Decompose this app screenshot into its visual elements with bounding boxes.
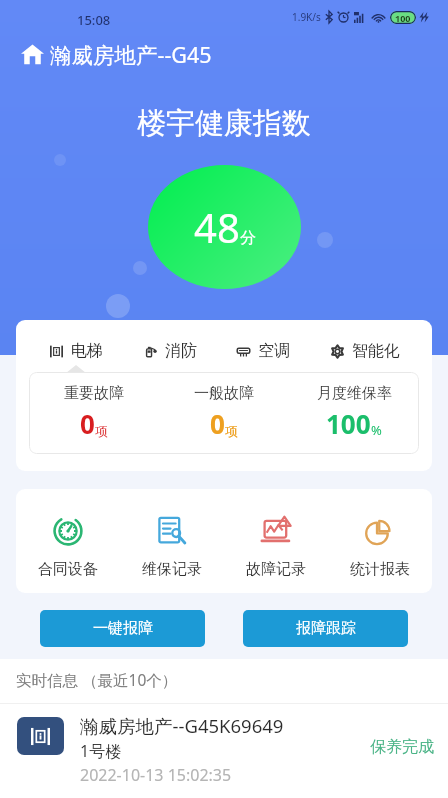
button[interactable]: 一键报障 [40, 610, 205, 647]
staticText: 48 [194, 200, 240, 254]
other: Bluetooth [325, 11, 333, 23]
staticText: 月度维保率 [317, 384, 392, 403]
staticText: 智能化 [352, 341, 400, 361]
staticText: 0 [80, 406, 95, 441]
staticText: 故障记录 [246, 560, 306, 579]
button[interactable]: 电梯 [50, 341, 103, 361]
staticText: 电梯 [71, 341, 103, 361]
staticText: 楼宇健康指数 [0, 105, 448, 142]
staticText: 2022-10-13 15:02:35 [80, 764, 232, 786]
button[interactable]: 报障跟踪 [243, 610, 408, 647]
staticText: 保养完成 [370, 737, 434, 757]
button[interactable]: 瀚威房地产--G45K69649 [0, 704, 448, 798]
button[interactable]: 空调 [237, 341, 290, 361]
staticText: 瀚威房地产--G45 [50, 40, 212, 69]
staticText: 一键报障 [93, 619, 153, 638]
staticText: 报障跟踪 [296, 619, 356, 638]
button[interactable]: 消防 [144, 341, 197, 361]
staticText: 一般故障 [194, 384, 254, 403]
button[interactable]: 故障记录 [224, 516, 328, 579]
button[interactable]: 合同设备 [16, 516, 120, 579]
staticText: 消防 [165, 341, 197, 361]
staticText: % [371, 421, 382, 439]
staticText: 1.9K/s [292, 10, 321, 24]
button[interactable]: 智能化 [331, 341, 400, 361]
staticText: 15:08 [77, 11, 111, 29]
staticText: 0 [210, 406, 225, 441]
staticText: 瀚威房地产--G45K69649 [80, 713, 284, 738]
staticText: 项 [225, 423, 238, 439]
staticText: 100 [326, 406, 371, 441]
staticText: 统计报表 [350, 560, 410, 579]
staticText: 维保记录 [142, 560, 202, 579]
staticText: 1号楼 [80, 740, 122, 762]
staticText: 项 [95, 423, 108, 439]
button[interactable]: Home [21, 34, 448, 74]
button[interactable]: 统计报表 [328, 516, 432, 579]
staticText: 重要故障 [64, 384, 124, 403]
other: Home [21, 43, 44, 66]
staticText: 实时信息 （最近10个） [16, 669, 178, 690]
staticText: 100 [395, 12, 411, 24]
button[interactable]: 维保记录 [120, 516, 224, 579]
staticText: 分 [240, 228, 256, 248]
staticText: 空调 [258, 341, 290, 361]
staticText: 合同设备 [38, 560, 98, 579]
